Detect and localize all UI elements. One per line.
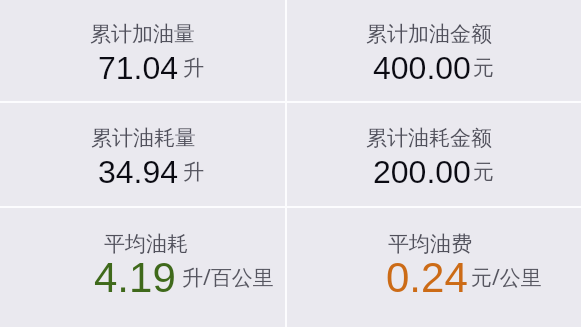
staticText: 升 — [183, 55, 204, 81]
staticText: 0.24 — [386, 254, 468, 301]
button[interactable]: 累计加油量 — [0, 0, 285, 101]
button[interactable]: 平均油耗 — [0, 208, 285, 327]
staticText: 升/百公里 — [182, 263, 274, 292]
staticText: 累计油耗量 — [91, 125, 196, 151]
button[interactable]: 平均油费 — [287, 208, 581, 327]
staticText: 平均油费 — [388, 231, 472, 257]
staticText: 累计加油金额 — [366, 21, 492, 47]
staticText: 升 — [183, 159, 204, 185]
staticText: 平均油耗 — [104, 231, 188, 257]
staticText: 71.04 — [98, 50, 179, 86]
staticText: 400.00 — [373, 50, 471, 86]
staticText: 元 — [473, 55, 494, 81]
button[interactable]: 累计油耗量 — [0, 103, 285, 206]
staticText: 4.19 — [94, 254, 176, 301]
staticText: 累计油耗金额 — [366, 125, 492, 151]
staticText: 200.00 — [373, 154, 471, 190]
staticText: 34.94 — [98, 154, 179, 190]
button[interactable]: 累计油耗金额 — [287, 103, 581, 206]
staticText: 元 — [473, 159, 494, 185]
staticText: 累计加油量 — [90, 21, 195, 47]
staticText: 元/公里 — [471, 263, 542, 292]
button[interactable]: 累计加油金额 — [287, 0, 581, 101]
